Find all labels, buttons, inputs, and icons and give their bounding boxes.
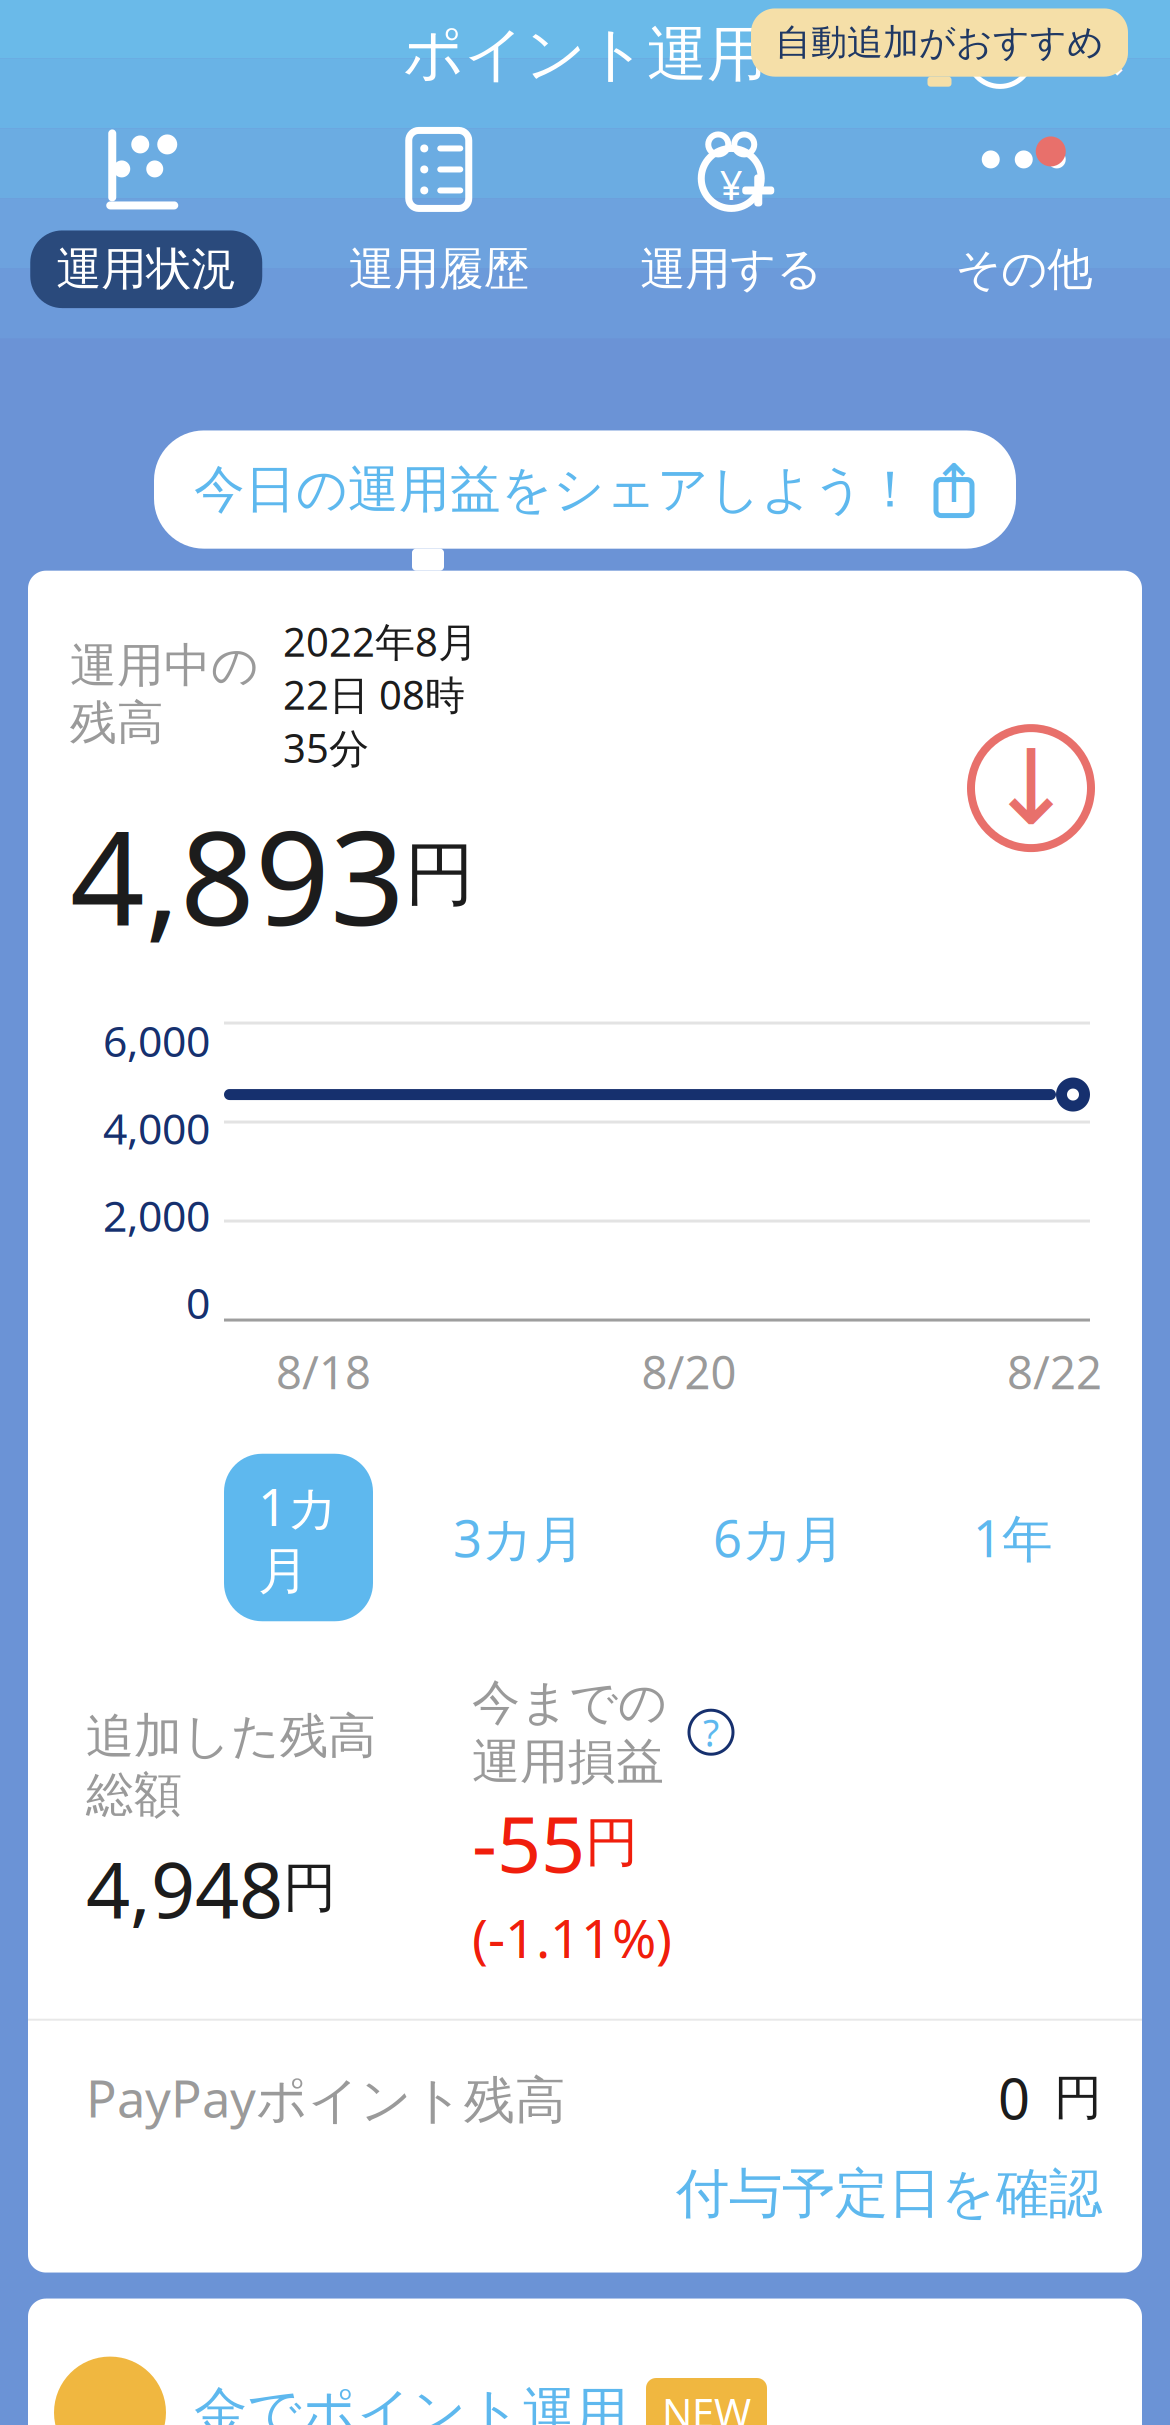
staticText: ポイント運用 — [403, 18, 767, 91]
staticText: 2,000 — [103, 1187, 210, 1244]
button[interactable]: 引き出す — [956, 713, 1106, 863]
button[interactable]: 閉じる — [1050, 4, 1150, 104]
staticText: 運用中の残高 — [70, 637, 259, 752]
staticText: 2022年8月22日 08時35分 — [283, 615, 478, 774]
button[interactable]: 付与予定日を確認 — [676, 2161, 1102, 2227]
staticText: 今までの運用損益 — [472, 1673, 667, 1791]
staticText: 8/20 — [641, 1341, 736, 1402]
staticText: (-1.11%) — [472, 1902, 672, 1973]
staticText: 1カ月 — [258, 1473, 339, 1602]
staticText: ✕ — [1067, 10, 1132, 98]
staticText: 円 — [585, 1810, 638, 1875]
staticText: 円 — [405, 832, 474, 917]
staticText: 3カ月 — [453, 1504, 585, 1571]
button[interactable]: 今日の運用益をシェアしよう！ — [154, 430, 1016, 549]
staticText: 8/22 — [1007, 1341, 1102, 1402]
staticText: 4,948 — [86, 1837, 283, 1939]
staticText: ↑ — [931, 453, 976, 514]
staticText: 円 — [1054, 2068, 1102, 2127]
button[interactable]: ¥ — [585, 124, 877, 364]
staticText: 金でポイント運用 — [194, 2380, 628, 2425]
staticText: 円 — [283, 1855, 336, 1921]
staticText: その他 — [955, 241, 1092, 297]
button[interactable]: ヘルプ — [950, 4, 1050, 104]
staticText: 6,000 — [103, 1012, 210, 1069]
staticText: 0 — [998, 2061, 1030, 2135]
staticText: NEW — [662, 2386, 751, 2425]
button[interactable]: 3カ月 — [419, 1485, 619, 1590]
staticText: 8/18 — [276, 1341, 371, 1402]
staticText: 0 — [186, 1274, 210, 1331]
staticText: 運用状況 — [56, 241, 236, 297]
staticText: 運用履歴 — [349, 241, 529, 297]
staticText: ? — [989, 21, 1011, 88]
button[interactable]: その他 — [877, 124, 1170, 364]
staticText: 運用する — [640, 241, 822, 297]
staticText: ¥ — [720, 158, 743, 211]
button[interactable]: 1カ月 — [224, 1454, 373, 1621]
button[interactable]: 運用状況 — [0, 124, 292, 364]
staticText: ? — [703, 1707, 719, 1757]
button[interactable]: 運用履歴 — [292, 124, 585, 364]
button[interactable]: 運用損益とは — [683, 1704, 739, 1760]
staticText: 自動追加がおすすめ — [775, 20, 1104, 65]
staticText: 追加した残高総額 — [86, 1707, 376, 1825]
staticText: 1年 — [973, 1504, 1053, 1571]
button[interactable]: 金でポイント運用 — [28, 2299, 1142, 2425]
button[interactable]: 6カ月 — [679, 1485, 879, 1590]
staticText: PayPayポイント残高 — [86, 2064, 566, 2132]
staticText: 4,893 — [70, 788, 405, 961]
button[interactable]: 1年 — [939, 1485, 1087, 1590]
staticText: 付与予定日を確認 — [676, 2161, 1102, 2227]
staticText: -55 — [472, 1791, 585, 1894]
staticText: ↓ — [987, 729, 1074, 847]
staticText: 今日の運用益をシェアしよう！ — [194, 458, 916, 521]
staticText: 4,000 — [103, 1099, 210, 1156]
staticText: 6カ月 — [713, 1504, 845, 1571]
